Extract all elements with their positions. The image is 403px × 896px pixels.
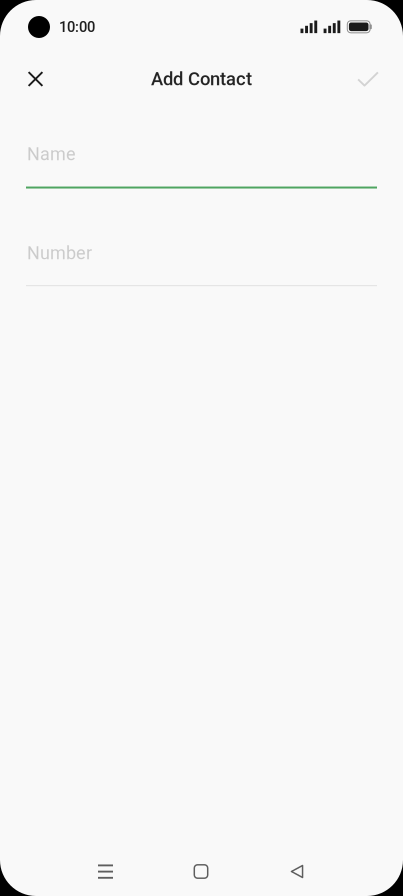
staticText: 10:00	[59, 18, 95, 36]
button[interactable]: Back	[265, 847, 329, 895]
staticText: Add Contact	[151, 68, 252, 90]
button[interactable]: Name	[26, 133, 377, 188]
button[interactable]: Recent apps	[73, 847, 137, 895]
button[interactable]: Home	[169, 847, 233, 895]
staticText: Name	[27, 143, 76, 165]
button[interactable]: Close	[11, 55, 59, 103]
button[interactable]: Save	[344, 55, 392, 103]
button[interactable]: Number	[26, 232, 377, 286]
staticText: Number	[27, 242, 92, 264]
